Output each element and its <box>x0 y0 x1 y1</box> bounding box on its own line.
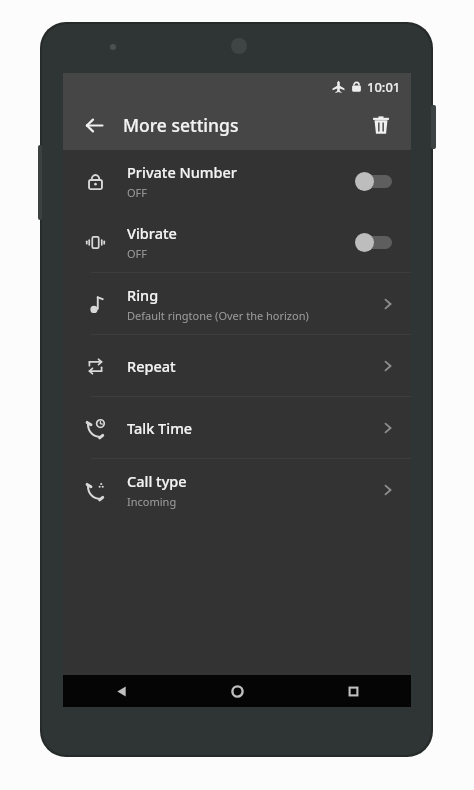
staticText: Incoming <box>127 494 177 509</box>
button[interactable]: Recents <box>295 675 411 707</box>
button[interactable]: Delete <box>363 107 399 143</box>
staticText: Default ringtone (Over the horizon) <box>127 308 309 323</box>
button[interactable]: Talk Time <box>63 397 411 458</box>
staticText: Call type <box>127 471 187 491</box>
button[interactable]: Back <box>77 108 111 142</box>
staticText: Vibrate <box>127 223 177 243</box>
button[interactable]: Repeat <box>63 335 411 396</box>
button[interactable]: Ring <box>63 273 411 334</box>
staticText: OFF <box>127 185 148 200</box>
staticText: OFF <box>127 246 148 261</box>
staticText: Private Number <box>127 162 237 182</box>
button[interactable]: Back <box>63 675 179 707</box>
button[interactable]: Home <box>179 675 295 707</box>
staticText: Ring <box>127 285 159 305</box>
staticText: Repeat <box>127 356 176 376</box>
staticText: 10:01 <box>367 78 401 96</box>
staticText: More settings <box>123 113 239 137</box>
staticText: Talk Time <box>127 418 193 438</box>
button[interactable]: Call type <box>63 459 411 520</box>
button[interactable]: Vibrate <box>63 211 411 272</box>
button[interactable]: Private Number <box>63 150 411 211</box>
